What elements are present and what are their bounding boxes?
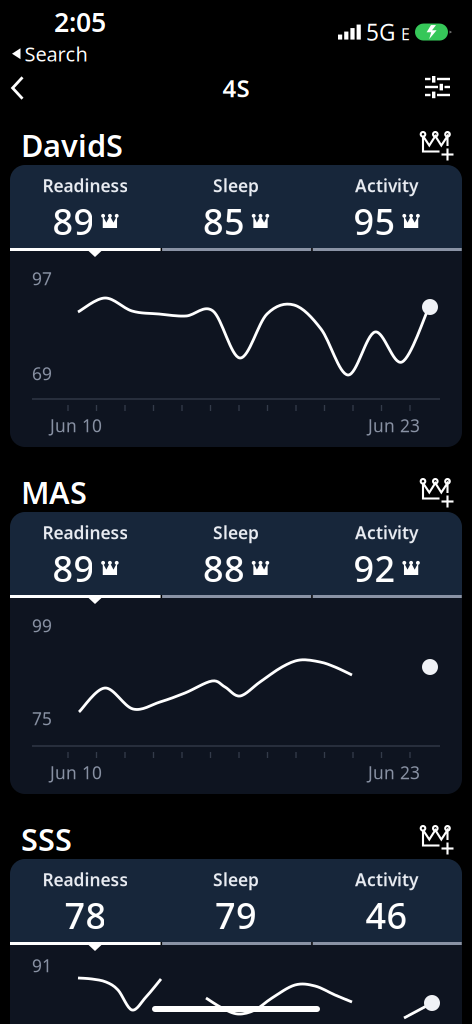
staticText: Activity xyxy=(355,174,418,197)
staticText: 89 xyxy=(52,197,94,245)
button[interactable]: Filter xyxy=(407,64,472,112)
staticText: 88 xyxy=(203,544,245,592)
button[interactable]: Add DavidS xyxy=(421,129,455,160)
staticText: 91 xyxy=(32,954,52,977)
staticText: Jun 23 xyxy=(368,761,420,784)
staticText: Activity xyxy=(355,521,418,544)
staticText: Jun 10 xyxy=(50,414,102,437)
staticText: 5G xyxy=(366,17,396,47)
staticText: Jun 23 xyxy=(368,414,420,437)
staticText: E xyxy=(401,23,410,45)
staticText: 2:05 xyxy=(54,4,106,39)
button[interactable]: Back xyxy=(0,64,44,112)
staticText: 78 xyxy=(64,891,106,939)
staticText: Sleep xyxy=(213,868,259,891)
button[interactable]: Add SSS xyxy=(421,823,455,854)
staticText: 97 xyxy=(32,267,52,290)
staticText: Sleep xyxy=(213,174,259,197)
staticText: Sleep xyxy=(213,521,259,544)
staticText: Jun 10 xyxy=(50,761,102,784)
staticText: Readiness xyxy=(42,521,128,544)
staticText: 46 xyxy=(366,891,408,939)
staticText: 92 xyxy=(354,544,396,592)
staticText: 89 xyxy=(52,544,94,592)
staticText: 69 xyxy=(32,362,52,385)
staticText: 95 xyxy=(354,197,396,245)
staticText: 85 xyxy=(203,197,245,245)
staticText: 99 xyxy=(32,614,52,637)
staticText: 75 xyxy=(32,707,52,730)
staticText: 79 xyxy=(215,891,257,939)
staticText: SSS xyxy=(21,819,72,859)
staticText: Readiness xyxy=(42,868,128,891)
staticText: MAS xyxy=(21,472,87,512)
staticText: Activity xyxy=(355,868,418,891)
staticText: 4S xyxy=(222,72,249,104)
staticText: Readiness xyxy=(42,174,128,197)
staticText: Search xyxy=(24,40,87,67)
button[interactable]: Add MAS xyxy=(421,476,455,507)
staticText: DavidS xyxy=(21,125,123,165)
